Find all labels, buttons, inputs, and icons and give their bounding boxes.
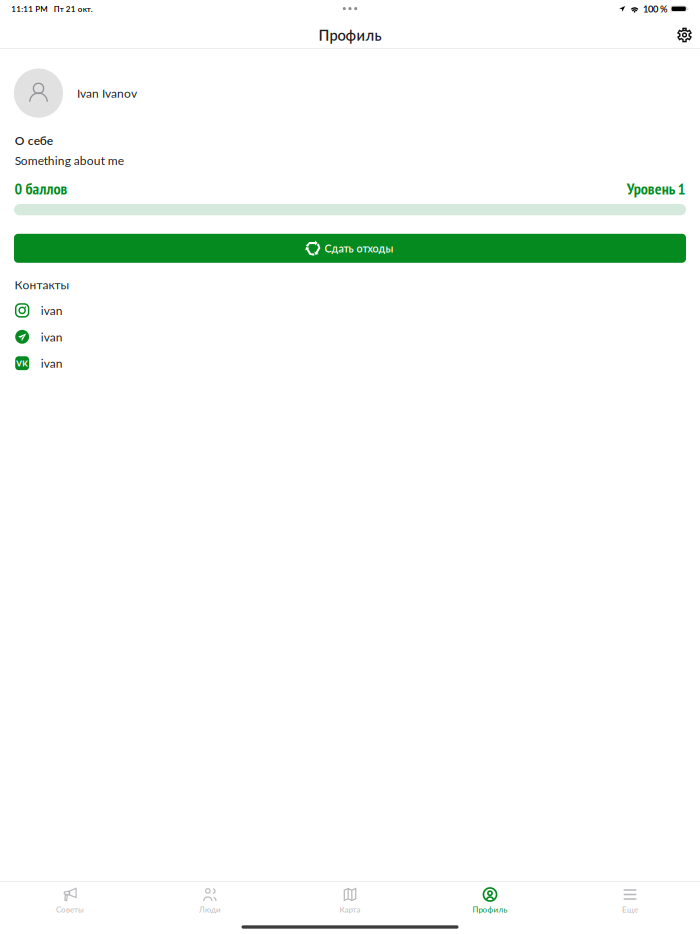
- staticText: Контакты: [14, 277, 69, 292]
- staticText: Something about me: [15, 153, 124, 167]
- staticText: Карта: [339, 905, 360, 914]
- staticText: Пт 21 окт.: [54, 4, 93, 14]
- staticText: Ivan Ivanov: [77, 86, 137, 100]
- staticText: 0 баллов: [14, 178, 67, 199]
- button[interactable]: Профиль: [420, 882, 560, 920]
- staticText: Профиль: [472, 905, 507, 914]
- staticText: Профиль: [318, 26, 381, 44]
- staticText: Еще: [622, 905, 638, 914]
- staticText: О себе: [15, 133, 53, 148]
- button[interactable]: Карта: [280, 882, 420, 920]
- staticText: ivan: [41, 330, 63, 344]
- staticText: VK: [16, 359, 28, 368]
- staticText: Люди: [199, 905, 221, 914]
- button[interactable]: ivan: [0, 324, 700, 350]
- button[interactable]: Settings: [669, 22, 700, 48]
- button[interactable]: ivan: [0, 297, 700, 324]
- staticText: Советы: [56, 905, 84, 914]
- staticText: 11:11 PM: [11, 4, 47, 14]
- button[interactable]: Сдать отходы: [14, 234, 686, 263]
- staticText: ivan: [41, 303, 63, 318]
- button[interactable]: Советы: [0, 882, 140, 920]
- staticText: Уровень 1: [627, 178, 686, 199]
- button[interactable]: VK: [0, 350, 700, 376]
- staticText: 100 %: [643, 3, 668, 14]
- button[interactable]: Еще: [560, 882, 700, 920]
- staticText: ivan: [41, 356, 63, 370]
- button[interactable]: Люди: [140, 882, 280, 920]
- staticText: Сдать отходы: [325, 242, 394, 255]
